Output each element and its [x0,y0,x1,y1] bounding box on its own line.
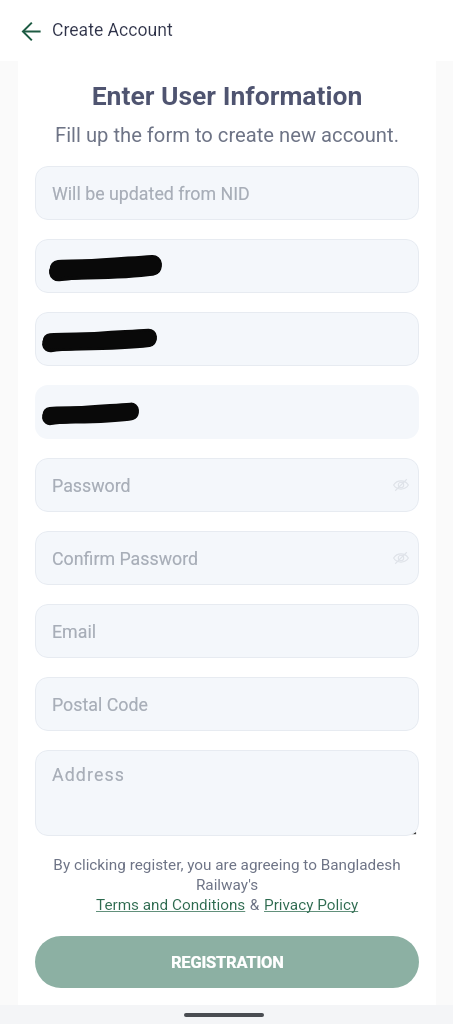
staticText: By clicking register, you are agreeing t… [34,856,420,893]
button[interactable]: Terms and Conditions [96,896,246,914]
button[interactable]: Back [13,13,49,49]
button[interactable]: Toggle password visibility [387,544,415,572]
staticText: REGISTRATION [171,953,284,972]
staticText: Password [52,475,131,496]
staticText: & [246,896,264,914]
button[interactable] [35,312,419,366]
button[interactable]: Email [35,604,419,658]
staticText: Confirm Password [52,548,199,569]
button[interactable]: Password [35,458,419,512]
button[interactable]: Confirm Password [35,531,419,585]
button[interactable]: Postal Code [35,677,419,731]
button[interactable]: REGISTRATION [35,936,419,988]
staticText: Fill up the form to create new account. [18,123,436,147]
staticText: Will be updated from NID [52,183,250,204]
button[interactable]: Toggle password visibility [387,471,415,499]
button[interactable] [35,385,419,439]
staticText: Email [52,621,97,642]
staticText: Postal Code [52,694,148,715]
button[interactable]: Will be updated from NID [35,166,419,220]
staticText: Enter User Information [18,80,436,111]
button[interactable] [35,239,419,293]
staticText: Create Account [52,20,173,41]
staticText: Address [52,764,126,785]
button[interactable]: Privacy Policy [264,896,359,914]
button[interactable]: Address [35,750,419,836]
